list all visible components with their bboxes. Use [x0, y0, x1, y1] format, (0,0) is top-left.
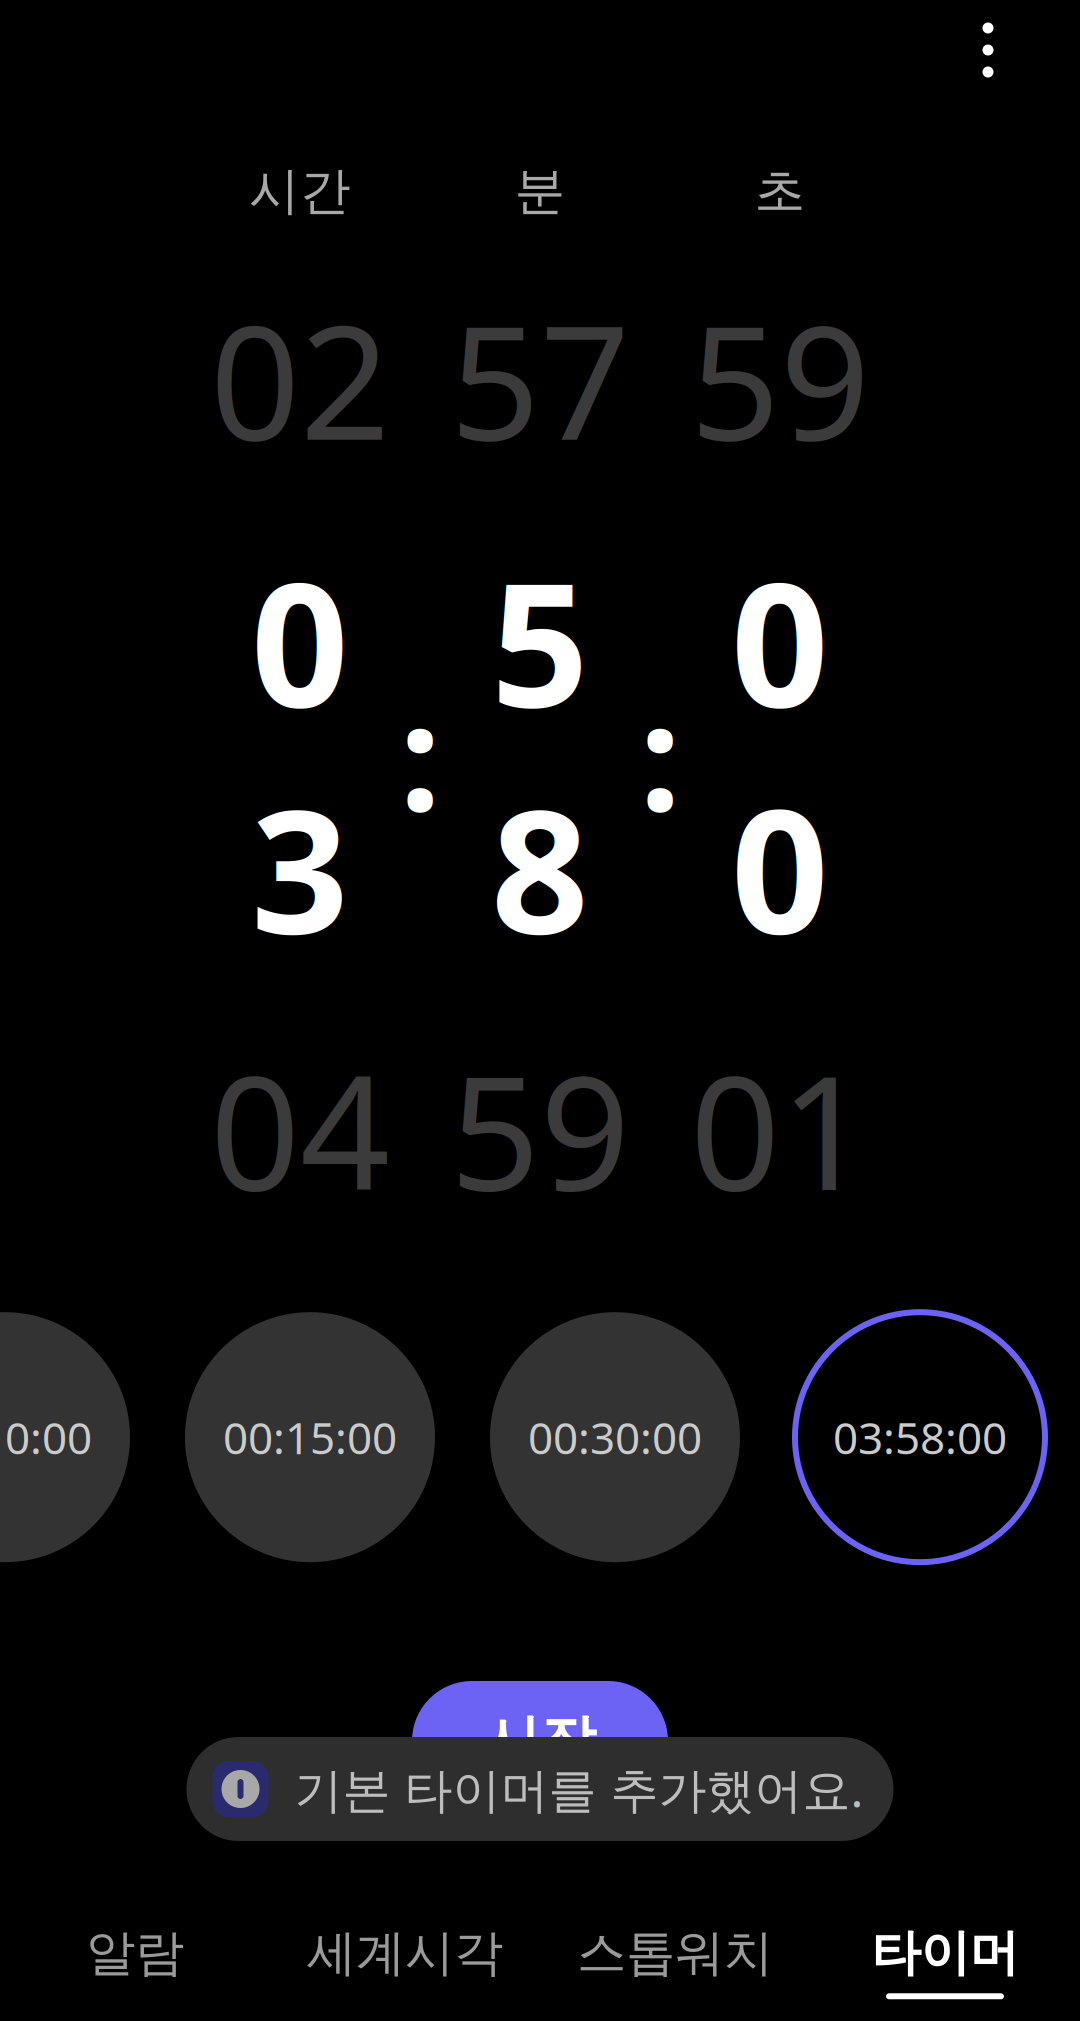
button[interactable]: 타이머 — [810, 1901, 1080, 2021]
staticText: 03:58:00 — [833, 1408, 1007, 1466]
staticText: 57 — [450, 274, 630, 483]
staticText: : — [399, 656, 440, 851]
staticText: 01 — [690, 1024, 870, 1233]
button[interactable]: 00:10:00 — [0, 1312, 130, 1562]
staticText: 59 — [690, 274, 870, 483]
button[interactable]: 스톱워치 — [540, 1901, 810, 2021]
staticText: 03 — [251, 527, 349, 980]
staticText: 초 — [754, 160, 805, 222]
staticText: 시작 — [484, 1707, 596, 1775]
staticText: 00:30:00 — [528, 1408, 702, 1466]
button[interactable]: 00:15:00 — [185, 1312, 435, 1562]
button[interactable]: 알람 — [0, 1901, 270, 2021]
staticText: 00 — [731, 527, 829, 980]
button[interactable]: 03:58:00 — [795, 1312, 1045, 1562]
button[interactable]: 00:30:00 — [490, 1312, 740, 1562]
staticText: 04 — [210, 1024, 390, 1233]
staticText: 시간 — [249, 160, 351, 222]
staticText: 타이머 — [871, 1923, 1018, 1983]
staticText: : — [639, 656, 680, 851]
staticText: 알람 — [86, 1923, 184, 1983]
staticText: 기본 타이머를 추가했어요. — [294, 1757, 863, 1821]
staticText: 02 — [210, 274, 390, 483]
staticText: 00:10:00 — [0, 1408, 92, 1466]
staticText: 00:15:00 — [223, 1408, 397, 1466]
staticText: 분 — [514, 160, 565, 222]
button[interactable]: 시작 — [412, 1681, 668, 1801]
staticText: 58 — [491, 527, 589, 980]
staticText: 스톱워치 — [577, 1923, 773, 1983]
staticText: 59 — [450, 1024, 630, 1233]
button[interactable]: More options — [940, 2, 1036, 98]
staticText: 세계시각 — [307, 1923, 503, 1983]
button[interactable]: 세계시각 — [270, 1901, 540, 2021]
